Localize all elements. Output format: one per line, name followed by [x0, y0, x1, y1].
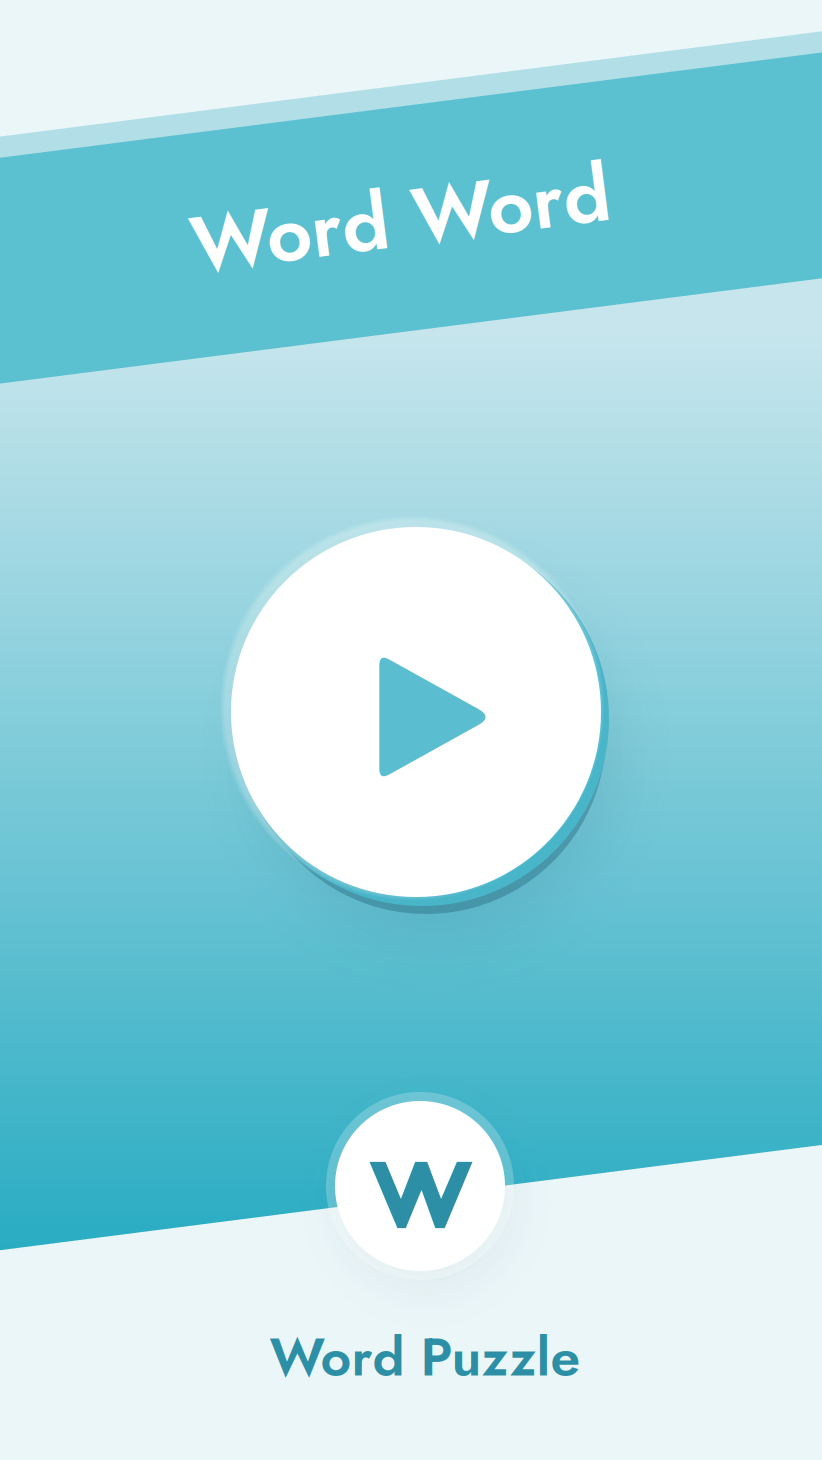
- staticText: Word Puzzle: [269, 1318, 580, 1396]
- button[interactable]: Word Word: [189, 162, 611, 276]
- staticText: Word Word: [189, 162, 611, 276]
- button[interactable]: Play: [211, 507, 621, 917]
